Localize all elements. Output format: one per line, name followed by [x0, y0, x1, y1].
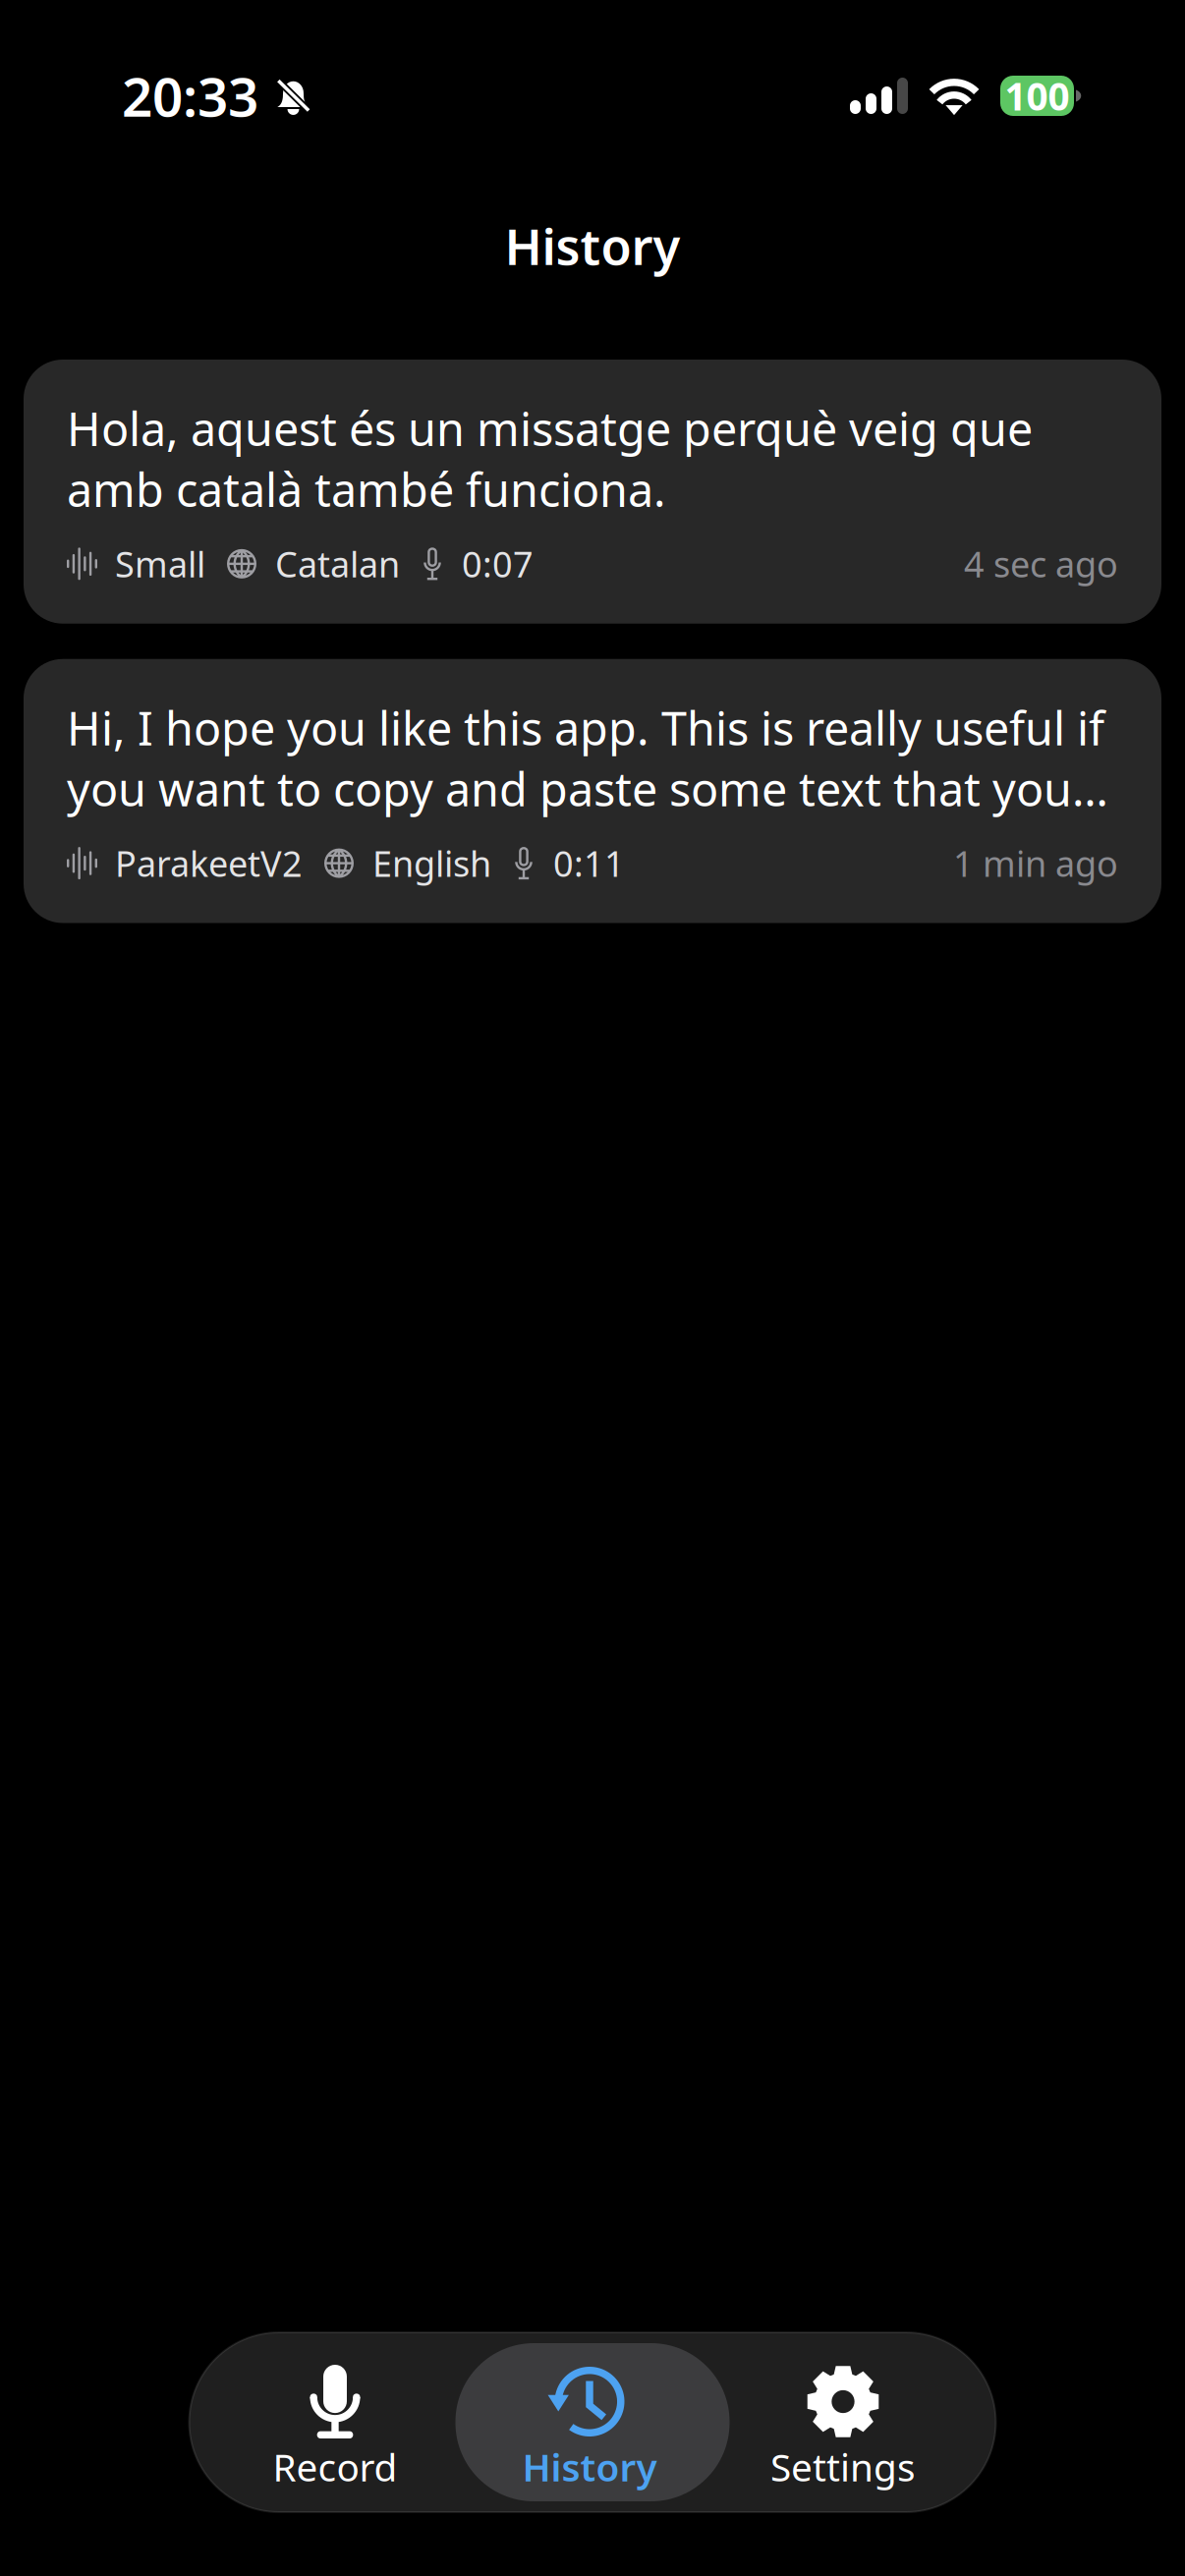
staticText: History	[522, 2441, 657, 2492]
staticText: Small	[115, 540, 205, 587]
staticText: 0:07	[462, 540, 534, 587]
staticText: Hi, I hope you like this app. This is re…	[67, 697, 1108, 819]
staticText: English	[372, 840, 491, 887]
button[interactable]: Hola, aquest és un missatge perquè veig …	[24, 360, 1161, 624]
staticText: 0:11	[553, 840, 625, 887]
staticText: Settings	[770, 2441, 916, 2492]
button[interactable]: Record	[189, 2343, 455, 2501]
button[interactable]: Hi, I hope you like this app. This is re…	[24, 659, 1161, 923]
staticText: Catalan	[275, 540, 400, 587]
button[interactable]: Settings	[730, 2343, 996, 2501]
staticText: History	[505, 213, 680, 279]
button[interactable]: History	[455, 2343, 730, 2501]
staticText: 20:33	[122, 60, 258, 131]
staticText: Hola, aquest és un missatge perquè veig …	[67, 398, 1033, 520]
staticText: 100	[1005, 71, 1070, 121]
staticText: ParakeetV2	[115, 840, 303, 887]
staticText: 4 sec ago	[964, 540, 1118, 587]
staticText: Record	[273, 2441, 397, 2492]
staticText: 1 min ago	[953, 840, 1118, 887]
